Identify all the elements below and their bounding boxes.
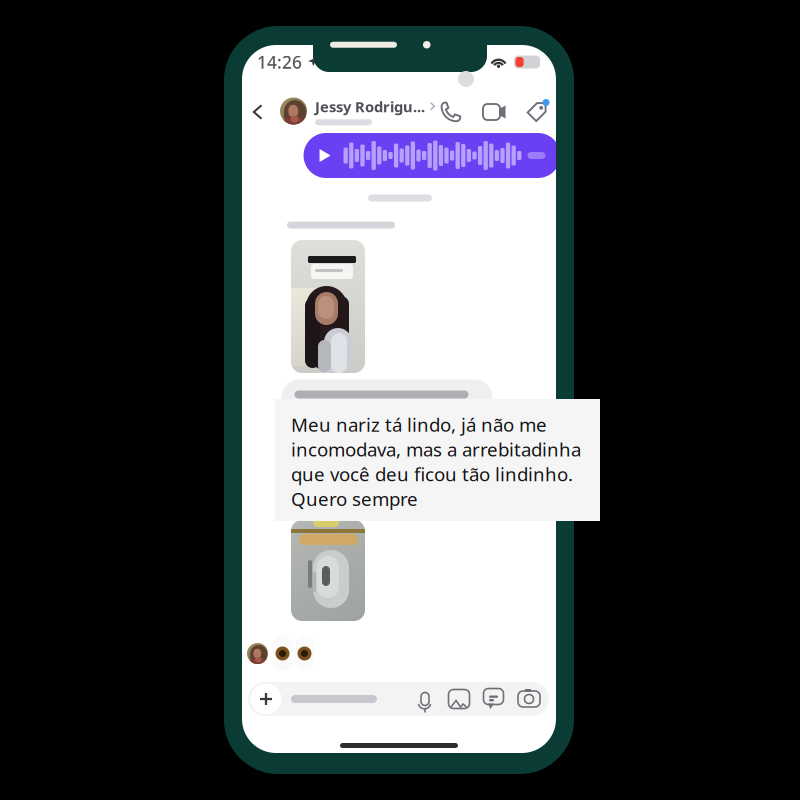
- button[interactable]: Photo: [447, 687, 471, 711]
- button[interactable]: Back: [244, 94, 272, 130]
- button[interactable]: Camera: [517, 687, 541, 711]
- button[interactable]: Video call: [483, 102, 507, 121]
- staticText: 14:26: [257, 50, 302, 73]
- button[interactable]: Audio call: [440, 101, 462, 123]
- staticText: Meu nariz tá lindo, já não me incomodava…: [291, 412, 581, 511]
- button[interactable]: Shop: [526, 101, 547, 122]
- button[interactable]: Voice message: [413, 687, 437, 711]
- button[interactable]: Jessy Rodrigu...: [280, 92, 440, 130]
- button[interactable]: Sticker: [482, 687, 506, 711]
- staticText: Jessy Rodrigu...: [315, 97, 425, 116]
- button[interactable]: More options: [249, 682, 283, 716]
